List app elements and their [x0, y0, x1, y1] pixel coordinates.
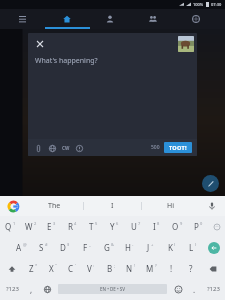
staticText: 8: [157, 221, 160, 226]
staticText: !: [170, 263, 173, 274]
button[interactable]: .: [187, 279, 201, 299]
button[interactable]: F: [76, 237, 98, 258]
staticText: H: [125, 242, 131, 253]
button[interactable]: K: [161, 237, 182, 258]
staticText: @: [23, 242, 27, 247]
button[interactable]: Y: [104, 216, 125, 237]
button[interactable]: P: [188, 216, 209, 237]
staticText: ": [55, 263, 57, 268]
button[interactable]: ?123: [0, 279, 24, 299]
button[interactable]: U: [125, 216, 146, 237]
button[interactable]: D: [54, 237, 76, 258]
staticText: 3: [53, 221, 56, 226]
staticText: M: [146, 263, 154, 274]
staticText: 7: [138, 221, 141, 226]
staticText: ?: [189, 263, 193, 274]
button[interactable]: TOOT!: [164, 142, 192, 153]
button[interactable]: Compose: [202, 175, 219, 192]
staticText: EN • DE • SV: [100, 286, 126, 292]
button[interactable]: Local timeline: [131, 9, 174, 29]
staticText: 0: [200, 221, 203, 226]
staticText: L: [189, 242, 194, 253]
staticText: ,: [30, 284, 33, 295]
button[interactable]: Close: [34, 38, 46, 50]
button[interactable]: Emoji: [169, 279, 187, 299]
button[interactable]: The: [26, 196, 83, 216]
staticText: ': [75, 263, 76, 268]
button[interactable]: M: [141, 258, 161, 279]
button[interactable]: V: [81, 258, 101, 279]
button[interactable]: Google: [0, 196, 26, 216]
button[interactable]: S: [32, 237, 54, 258]
button[interactable]: Shift: [0, 258, 24, 279]
button[interactable]: Z: [24, 258, 43, 279]
button[interactable]: Home: [45, 9, 88, 29]
button[interactable]: Emoji: [209, 216, 225, 237]
button[interactable]: Q: [0, 216, 20, 237]
button[interactable]: I: [146, 216, 167, 237]
staticText: 1: [13, 221, 16, 226]
staticText: The: [48, 201, 61, 211]
button[interactable]: H: [119, 237, 140, 258]
button[interactable]: N: [121, 258, 141, 279]
button[interactable]: Change keyboard language: [38, 279, 56, 299]
staticText: #: [45, 242, 48, 247]
button[interactable]: J: [140, 237, 161, 258]
staticText: Y: [110, 221, 115, 232]
button[interactable]: ?123: [201, 279, 225, 299]
staticText: G: [104, 242, 110, 253]
staticText: ?: [155, 263, 157, 268]
staticText: R: [68, 221, 73, 232]
button[interactable]: Notifications: [88, 9, 131, 29]
button[interactable]: Mark sensitive: [74, 143, 84, 153]
button[interactable]: Space: [58, 284, 167, 294]
staticText: ?123: [6, 285, 19, 293]
button[interactable]: Avatar: [178, 36, 194, 52]
staticText: *: [35, 263, 38, 268]
button[interactable]: C: [62, 258, 81, 279]
button[interactable]: T: [83, 216, 104, 237]
staticText: _: [89, 242, 91, 247]
staticText: I: [153, 221, 156, 232]
button[interactable]: Menu: [0, 9, 45, 29]
staticText: F: [83, 242, 88, 253]
staticText: :: [93, 263, 95, 268]
button[interactable]: I: [84, 196, 141, 216]
staticText: 4: [74, 221, 77, 226]
button[interactable]: G: [98, 237, 119, 258]
button[interactable]: X: [43, 258, 62, 279]
staticText: U: [131, 221, 137, 232]
staticText: !: [134, 263, 136, 268]
button[interactable]: ,: [24, 279, 38, 299]
button[interactable]: Backspace: [201, 258, 225, 279]
button[interactable]: ?: [181, 258, 201, 279]
staticText: I: [111, 201, 114, 211]
staticText: -: [132, 242, 134, 247]
button[interactable]: B: [101, 258, 121, 279]
button[interactable]: Attach media: [33, 143, 43, 153]
staticText: 500: [151, 144, 160, 151]
staticText: V: [87, 263, 92, 274]
staticText: Z: [29, 263, 34, 274]
button[interactable]: Federated timeline: [174, 9, 217, 29]
staticText: W: [25, 221, 33, 232]
staticText: 2: [34, 221, 37, 226]
button[interactable]: E: [41, 216, 62, 237]
staticText: CW: [62, 145, 70, 151]
staticText: Hi: [167, 201, 174, 211]
button[interactable]: Enter: [203, 237, 225, 258]
staticText: J: [147, 242, 150, 253]
button[interactable]: Voice input: [199, 196, 225, 216]
staticText: O: [172, 221, 179, 232]
button[interactable]: A: [10, 237, 32, 258]
button[interactable]: R: [62, 216, 83, 237]
button[interactable]: W: [20, 216, 41, 237]
button[interactable]: Change visibility: [47, 143, 57, 153]
button[interactable]: Hi: [142, 196, 199, 216]
button[interactable]: O: [167, 216, 188, 237]
button[interactable]: !: [161, 258, 181, 279]
staticText: T: [89, 221, 94, 232]
button[interactable]: Content warning: [61, 145, 70, 151]
button[interactable]: L: [182, 237, 203, 258]
staticText: 07:30: [211, 2, 222, 7]
